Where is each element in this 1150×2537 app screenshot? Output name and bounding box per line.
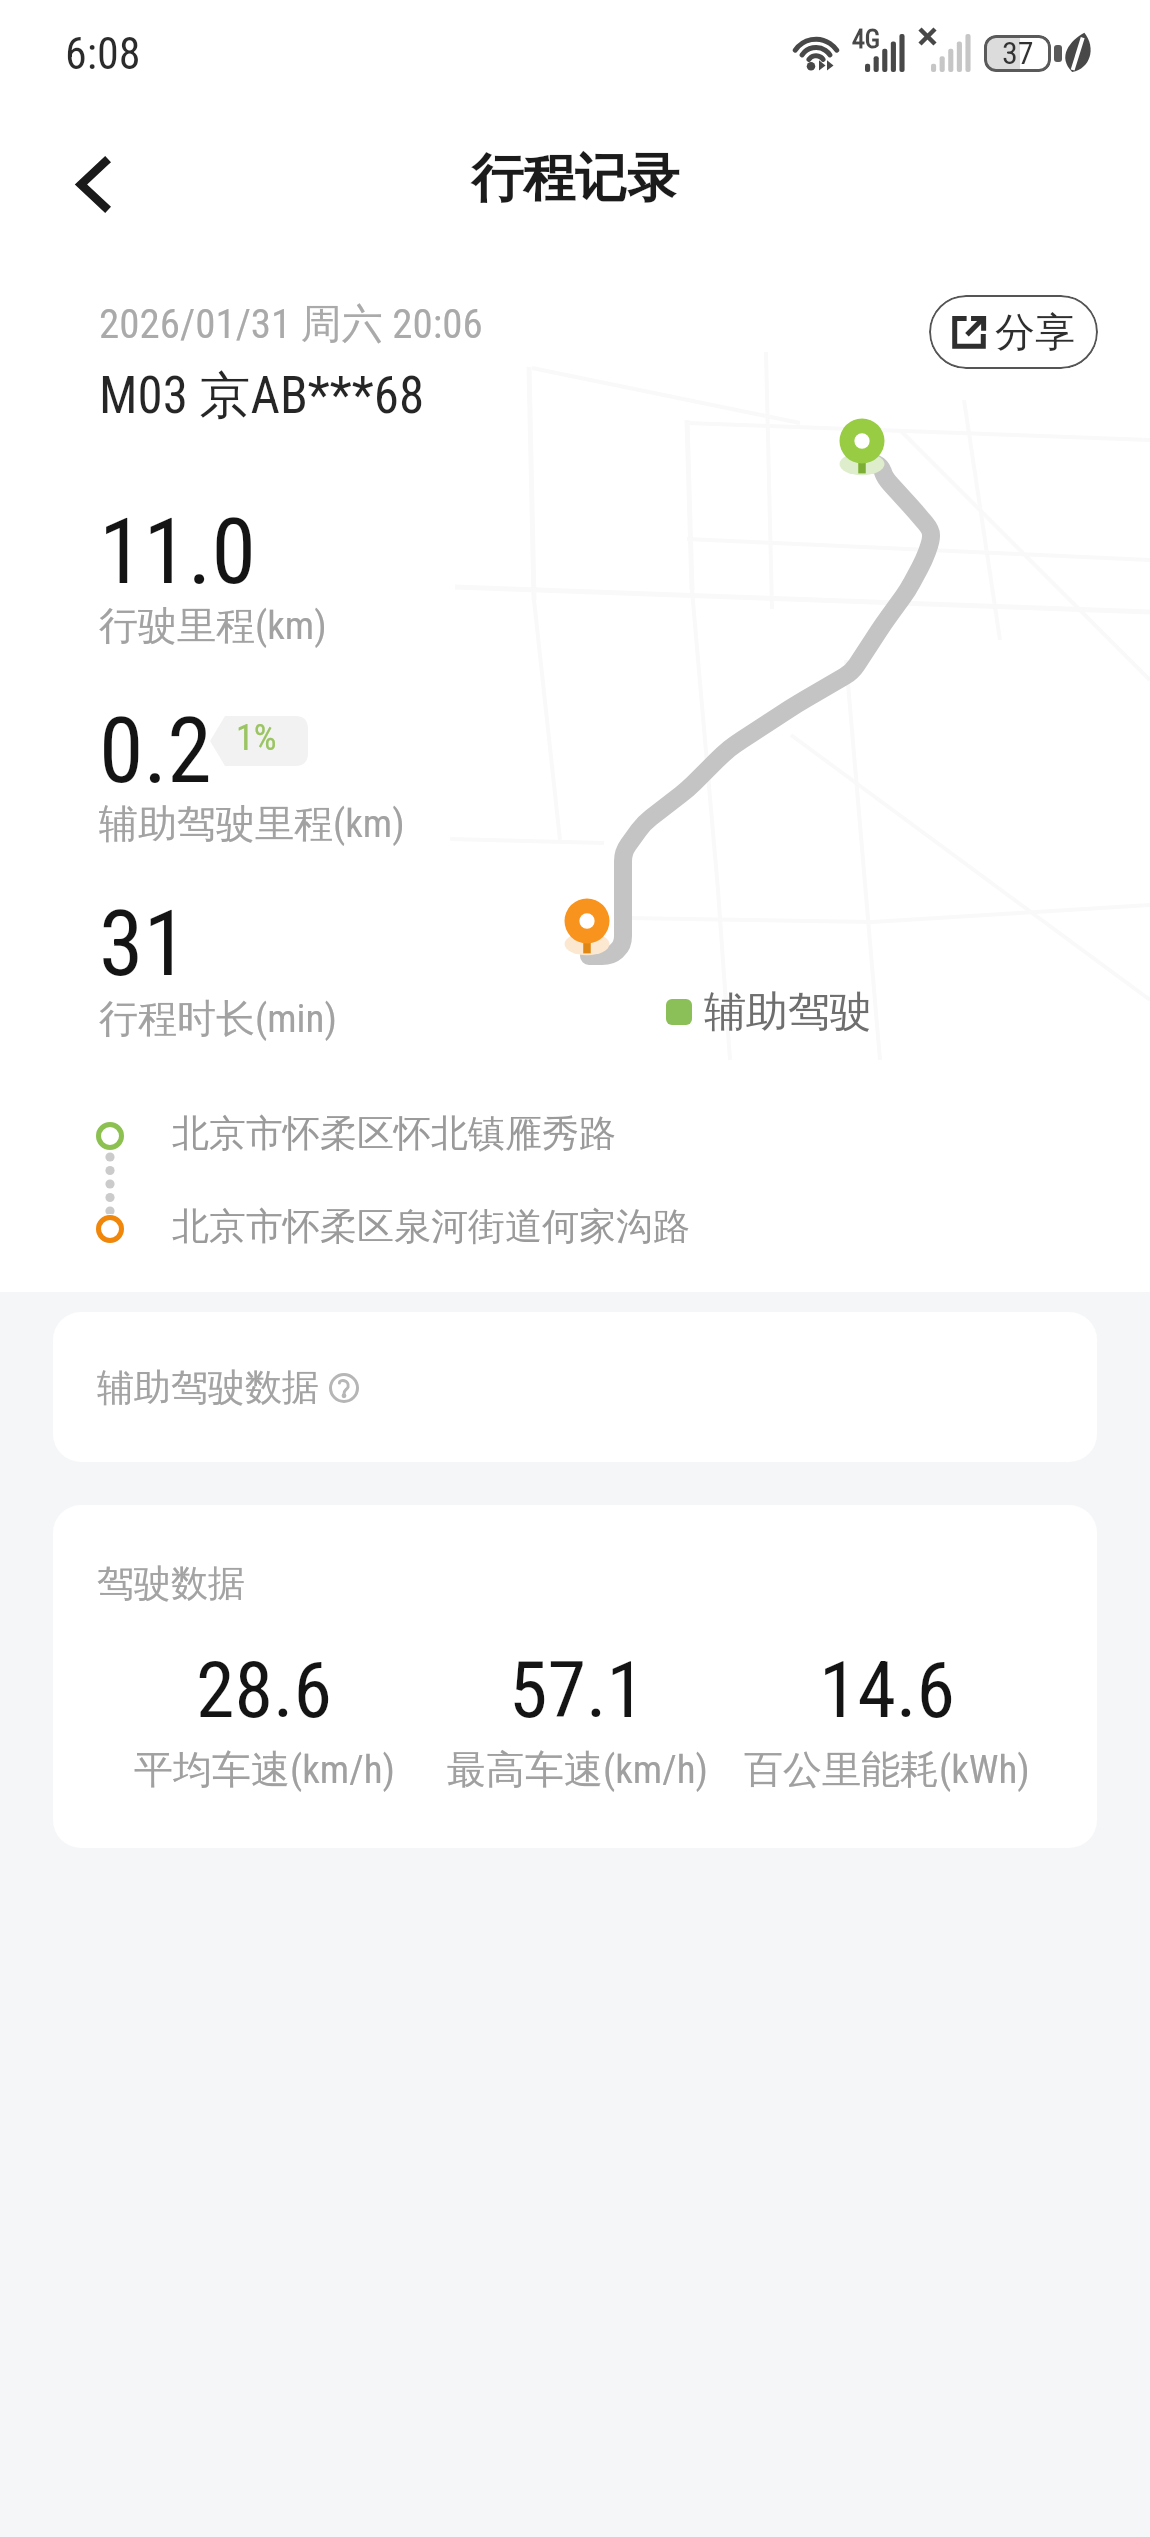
staticText: 28.6 [196,1645,333,1736]
staticText: 行程记录 [471,146,679,212]
staticText: 百公里能耗(kWh) [744,1745,1030,1794]
staticText: 0.2 [99,699,212,804]
staticText: 辅助驾驶数据 [97,1364,319,1411]
staticText: 6:08 [65,28,141,80]
staticText: 分享 [995,307,1075,357]
staticText: 驾驶数据 [97,1560,245,1607]
staticText: 57.1 [509,1645,646,1736]
button[interactable]: Back [47,138,139,230]
staticText: 11.0 [99,500,257,605]
staticText: 31 [99,892,188,997]
staticText: 辅助驾驶里程(km) [99,799,405,848]
staticText: 37 [1002,35,1034,71]
staticText: 1% [236,717,277,759]
button[interactable]: 辅助驾驶数据 [53,1312,1097,1462]
staticText: 辅助驾驶 [704,986,872,1039]
staticText: 北京市怀柔区泉河街道何家沟路 [172,1203,690,1250]
button[interactable]: 分享 [929,295,1098,369]
staticText: 最高车速(km/h) [447,1745,708,1794]
staticText: 14.6 [819,1645,956,1736]
staticText: 行驶里程(km) [99,601,327,650]
staticText: M03 京AB***68 [99,364,425,428]
staticText: 2026/01/31 周六 20:06 [99,299,483,351]
staticText: 行程时长(min) [99,994,337,1043]
staticText: 4G [852,24,881,54]
staticText: 北京市怀柔区怀北镇雁秀路 [172,1110,616,1157]
staticText: 平均车速(km/h) [134,1745,395,1794]
